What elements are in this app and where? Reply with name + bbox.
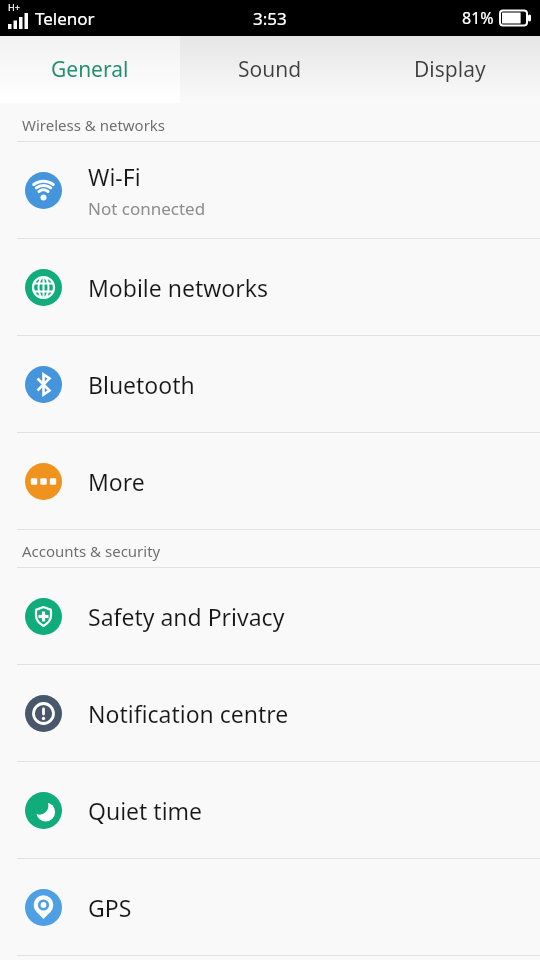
staticText: Mobile networks xyxy=(88,272,269,303)
button[interactable]: Wi-Fi xyxy=(0,142,540,239)
staticText: Display xyxy=(414,55,486,84)
staticText: Accounts & security xyxy=(22,541,161,561)
staticText: Notification centre xyxy=(88,698,289,729)
staticText: 81% xyxy=(462,7,494,29)
button[interactable]: Bluetooth xyxy=(0,336,540,433)
staticText: Not connected xyxy=(88,197,206,220)
staticText: Wireless & networks xyxy=(22,115,166,135)
staticText: Bluetooth xyxy=(88,369,195,400)
button[interactable]: Notification centre xyxy=(0,665,540,762)
button[interactable]: Safety and Privacy xyxy=(0,568,540,665)
staticText: Sound xyxy=(238,55,302,84)
staticText: More xyxy=(88,466,145,497)
staticText: Telenor xyxy=(35,7,95,30)
staticText: GPS xyxy=(88,892,132,923)
staticText: 3:53 xyxy=(253,7,287,30)
staticText: Safety and Privacy xyxy=(88,601,285,632)
button[interactable]: Mobile networks xyxy=(0,239,540,336)
button[interactable]: GPS xyxy=(0,859,540,956)
button[interactable]: Quiet time xyxy=(0,762,540,859)
staticText: Wi-Fi xyxy=(88,161,141,192)
staticText: Quiet time xyxy=(88,795,203,826)
button[interactable]: Display xyxy=(360,36,540,103)
button[interactable]: General xyxy=(0,36,180,103)
staticText: H+ xyxy=(8,1,20,13)
button[interactable]: Sound xyxy=(180,36,360,103)
staticText: General xyxy=(51,55,129,84)
button[interactable]: More xyxy=(0,433,540,530)
